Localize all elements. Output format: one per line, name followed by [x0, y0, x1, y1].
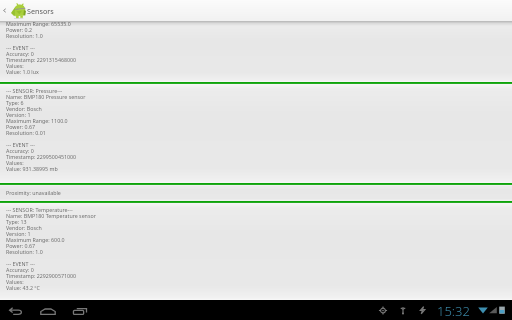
other: GPS — [379, 305, 387, 315]
button[interactable]: Navigate up — [0, 0, 9, 21]
staticText: Proximity: unavailable — [6, 190, 61, 196]
other: Debugging — [418, 305, 427, 315]
staticText: --- SENSOR: Pressure--- Name: BMP180 Pre… — [6, 88, 86, 172]
staticText: 15:32 — [437, 302, 470, 320]
button[interactable]: Back — [5, 300, 27, 320]
button[interactable]: Proximity: unavailable — [0, 185, 512, 201]
staticText: Sensors — [27, 6, 54, 16]
button[interactable]: Home — [36, 300, 60, 320]
button[interactable]: --- SENSOR: Temperature--- Name: BMP180 … — [0, 203, 512, 300]
staticText: Maximum Range: 65535.0 Power: 0.2 Resolu… — [6, 21, 77, 75]
staticText: --- SENSOR: Temperature--- Name: BMP180 … — [6, 207, 96, 291]
button[interactable]: Maximum Range: 65535.0 Power: 0.2 Resolu… — [0, 21, 512, 82]
button[interactable]: Recent apps — [69, 300, 92, 320]
other: USB connected — [399, 305, 407, 315]
button[interactable]: --- SENSOR: Pressure--- Name: BMP180 Pre… — [0, 84, 512, 183]
